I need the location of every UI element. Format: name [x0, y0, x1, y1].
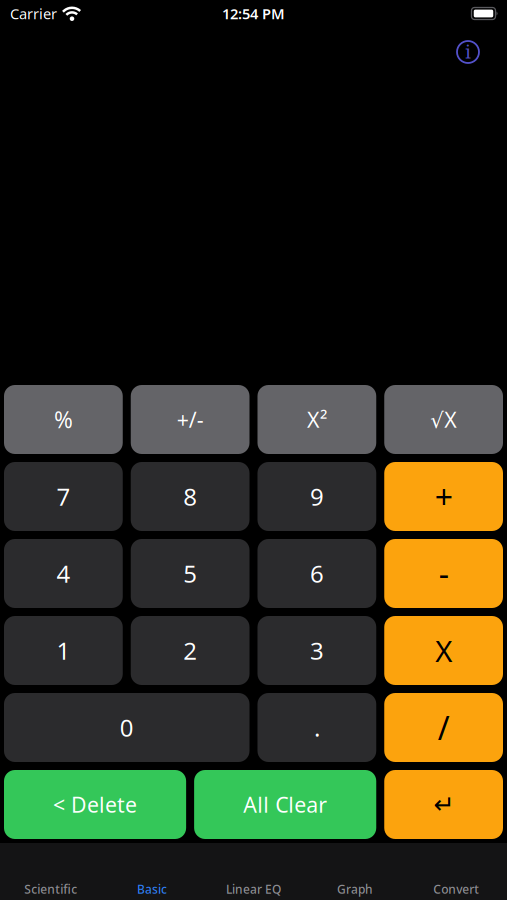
staticText: Convert	[433, 881, 479, 897]
staticText: 9	[310, 481, 324, 512]
button[interactable]: 1	[4, 616, 123, 685]
button[interactable]: Scientific	[0, 843, 101, 900]
staticText: X	[435, 631, 452, 670]
button[interactable]: All Clear	[194, 770, 376, 839]
staticText: 8	[183, 481, 197, 512]
staticText: All Clear	[243, 790, 327, 819]
staticText: ↵	[433, 790, 454, 819]
staticText: Graph	[337, 881, 373, 897]
staticText: 2	[183, 635, 197, 666]
staticText: 5	[183, 558, 197, 589]
button[interactable]: 3	[257, 616, 376, 685]
button[interactable]: 5	[131, 539, 250, 608]
staticText: 3	[310, 635, 324, 666]
staticText: i	[465, 41, 471, 63]
staticText: 1	[56, 635, 70, 666]
staticText: 4	[56, 558, 70, 589]
button[interactable]: Linear EQ	[203, 843, 304, 900]
staticText: %	[54, 404, 73, 434]
staticText: 7	[56, 481, 70, 512]
staticText: 0	[120, 712, 134, 743]
staticText: +/-	[177, 405, 204, 434]
button[interactable]: Convert	[406, 843, 507, 900]
button[interactable]: X	[384, 616, 503, 685]
button[interactable]: 7	[4, 462, 123, 531]
button[interactable]: 4	[4, 539, 123, 608]
button[interactable]: 0	[4, 693, 249, 762]
button[interactable]: 6	[257, 539, 376, 608]
button[interactable]: .	[257, 693, 376, 762]
button[interactable]: /	[384, 693, 503, 762]
staticText: Scientific	[24, 881, 77, 897]
staticText: Carrier	[10, 4, 57, 23]
button[interactable]: Basic	[101, 843, 203, 900]
button[interactable]: Info	[455, 39, 481, 65]
staticText: X²	[307, 405, 327, 434]
staticText: < Delete	[53, 790, 137, 819]
staticText: 12:54 PM	[222, 4, 285, 23]
staticText: √X	[430, 405, 457, 434]
staticText: Linear EQ	[226, 881, 281, 897]
button[interactable]: Enter	[384, 770, 503, 839]
button[interactable]: 2	[131, 616, 250, 685]
button[interactable]: 8	[131, 462, 250, 531]
button[interactable]: 9	[257, 462, 376, 531]
staticText: +	[435, 475, 453, 518]
button[interactable]: %	[4, 385, 123, 454]
button[interactable]: +/-	[131, 385, 250, 454]
button[interactable]: X²	[257, 385, 376, 454]
staticText: -	[439, 552, 449, 595]
staticText: Basic	[137, 881, 167, 897]
button[interactable]: Graph	[304, 843, 406, 900]
button[interactable]: -	[384, 539, 503, 608]
button[interactable]: +	[384, 462, 503, 531]
staticText: 6	[310, 558, 324, 589]
staticText: .	[314, 712, 320, 743]
button[interactable]: < Delete	[4, 770, 186, 839]
button[interactable]: √X	[384, 385, 503, 454]
staticText: /	[438, 706, 450, 749]
